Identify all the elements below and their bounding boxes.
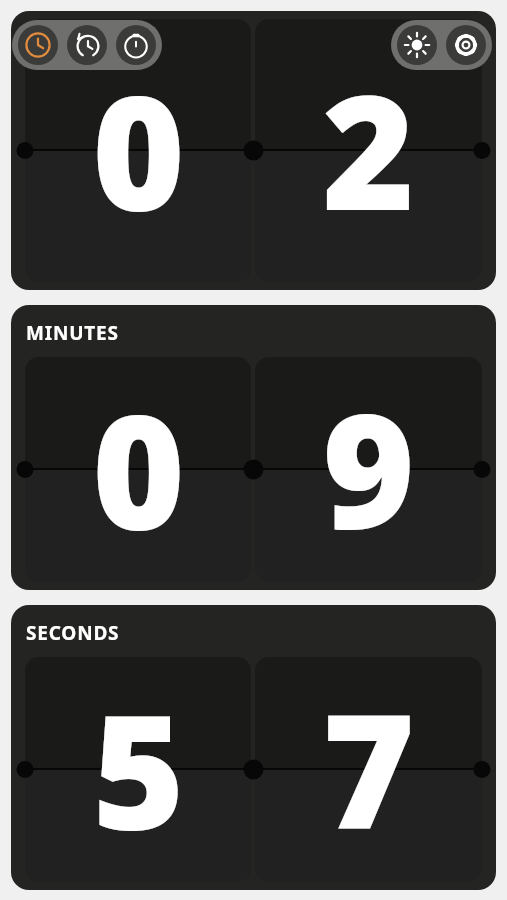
staticText: SECONDS	[26, 620, 120, 646]
button[interactable]: 5	[25, 657, 251, 882]
button[interactable]: Settings	[446, 25, 486, 65]
staticText: 0	[92, 360, 185, 575]
staticText: 2	[322, 41, 415, 256]
staticText: 5	[92, 660, 185, 875]
button[interactable]: Recent	[67, 25, 107, 65]
button[interactable]: Clock	[18, 25, 58, 65]
button[interactable]: 2	[255, 19, 482, 282]
staticText: 7	[322, 660, 415, 875]
button[interactable]: Timer	[116, 25, 156, 65]
staticText: 0	[92, 41, 185, 256]
button[interactable]: 9	[255, 357, 482, 582]
button[interactable]: 0	[25, 19, 251, 282]
staticText: MINUTES	[26, 320, 119, 346]
button[interactable]: 7	[255, 657, 482, 882]
button[interactable]: 0	[25, 357, 251, 582]
button[interactable]: Brightness	[397, 25, 437, 65]
staticText: 9	[322, 360, 415, 575]
